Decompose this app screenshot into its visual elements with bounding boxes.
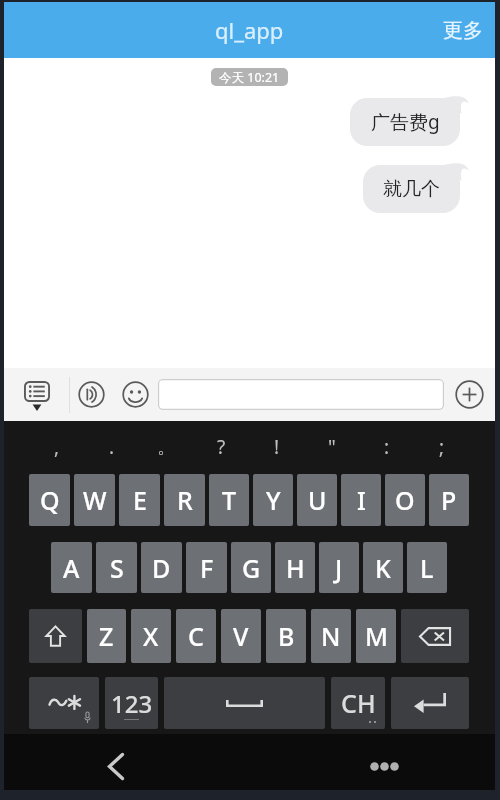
staticText: 更多 [443, 18, 483, 43]
button[interactable]: L [407, 542, 447, 593]
staticText: W [83, 483, 107, 517]
staticText: ? [217, 434, 226, 460]
staticText: N [321, 619, 341, 653]
button[interactable]: 更多 [427, 2, 495, 58]
button[interactable]: , [29, 426, 84, 468]
staticText: T [222, 483, 237, 517]
button[interactable]: Voice message [70, 368, 113, 421]
staticText: F [200, 551, 214, 585]
staticText: 今天 10:21 [219, 69, 280, 86]
button[interactable]: Back [75, 743, 156, 790]
staticText: , [54, 434, 60, 460]
button[interactable]: I [341, 474, 381, 526]
button[interactable]: T [209, 474, 249, 526]
button[interactable]: Shift [29, 609, 82, 663]
button[interactable]: X [131, 609, 171, 663]
staticText: S [110, 551, 124, 585]
button[interactable] [29, 677, 99, 729]
staticText: Q [40, 483, 60, 517]
button[interactable]: K [363, 542, 403, 593]
staticText: I [357, 483, 366, 517]
button[interactable]: Enter [391, 677, 469, 729]
staticText: H [286, 551, 305, 585]
button[interactable]: Emoji [113, 368, 158, 421]
button[interactable]: : [359, 426, 414, 468]
staticText: C [188, 619, 204, 653]
staticText: B [278, 619, 295, 653]
button[interactable]: G [231, 542, 271, 593]
button[interactable]: 。 [139, 426, 194, 468]
button[interactable]: J [319, 542, 359, 593]
staticText: ! [274, 434, 280, 460]
button[interactable]: N [311, 609, 351, 663]
button[interactable]: S [96, 542, 137, 593]
button[interactable]: W [74, 474, 115, 526]
staticText: ql_app [215, 15, 284, 45]
button[interactable] [158, 379, 444, 410]
button[interactable]: ! [249, 426, 304, 468]
staticText: Y [266, 483, 281, 517]
button[interactable]: U [297, 474, 337, 526]
button[interactable]: . [84, 426, 139, 468]
staticText: A [63, 551, 80, 585]
button[interactable]: " [304, 426, 359, 468]
staticText: : [384, 434, 390, 460]
button[interactable]: A [51, 542, 92, 593]
button[interactable]: Recent apps [336, 743, 432, 790]
staticText: " [328, 434, 336, 460]
button[interactable]: 广告费g [350, 98, 460, 146]
staticText: 123 [111, 687, 153, 720]
staticText: 就几个 [383, 177, 440, 201]
staticText: M [365, 619, 388, 653]
button[interactable]: Backspace [401, 609, 469, 663]
button[interactable]: B [266, 609, 306, 663]
button[interactable]: D [141, 542, 182, 593]
button[interactable]: CH [331, 677, 385, 729]
staticText: CH [341, 686, 376, 720]
button[interactable]: V [221, 609, 261, 663]
button[interactable]: H [275, 542, 315, 593]
staticText: L [420, 551, 434, 585]
staticText: Z [99, 619, 114, 653]
button[interactable]: P [429, 474, 469, 526]
button[interactable]: R [164, 474, 205, 526]
button[interactable]: ? [194, 426, 249, 468]
button[interactable]: F [186, 542, 227, 593]
staticText: 。 [157, 435, 176, 459]
staticText: ; [439, 434, 445, 460]
staticText: R [177, 483, 193, 517]
button[interactable]: 123 [105, 677, 158, 729]
button[interactable]: 就几个 [363, 165, 460, 213]
staticText: E [133, 483, 147, 517]
staticText: U [308, 483, 327, 517]
button[interactable]: Y [253, 474, 293, 526]
staticText: . [109, 434, 115, 460]
button[interactable]: O [385, 474, 425, 526]
staticText: V [233, 619, 249, 653]
button[interactable]: Z [87, 609, 126, 663]
staticText: 广告费g [371, 109, 440, 135]
button[interactable]: Add attachment [444, 368, 495, 421]
staticText: X [143, 619, 159, 653]
staticText: P [441, 483, 457, 517]
button[interactable]: C [176, 609, 216, 663]
button[interactable]: ; [414, 426, 469, 468]
staticText: J [335, 551, 343, 585]
button[interactable]: Quick reply list [4, 368, 69, 421]
button[interactable]: Q [29, 474, 70, 526]
staticText: K [375, 551, 391, 585]
button[interactable]: M [356, 609, 396, 663]
button[interactable]: E [119, 474, 160, 526]
staticText: D [152, 551, 171, 585]
staticText: O [395, 483, 415, 517]
staticText: G [242, 551, 261, 585]
button[interactable]: Space [164, 677, 325, 729]
